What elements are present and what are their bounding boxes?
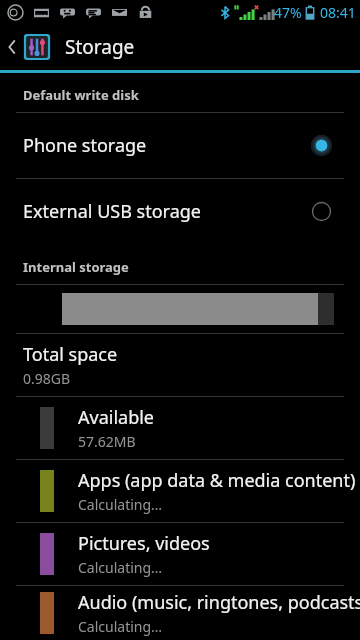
button[interactable]: External USB storage — [0, 179, 360, 244]
staticText: Total space — [23, 342, 118, 367]
button[interactable]: Up, Storage — [0, 24, 360, 70]
staticText: Pictures, videos — [78, 531, 210, 556]
staticText: 0.98GB — [23, 369, 71, 388]
staticText: 08:41 — [320, 3, 356, 22]
button[interactable]: Total space — [0, 334, 360, 396]
staticText: External USB storage — [23, 199, 201, 224]
button[interactable]: Audio (music, ringtones, podcasts) — [0, 586, 360, 640]
button[interactable]: Phone storage — [0, 113, 360, 178]
button[interactable]: Apps (app data & media content) — [0, 460, 360, 522]
staticText: Phone storage — [23, 133, 147, 158]
staticText: Apps (app data & media content) — [78, 468, 356, 493]
button[interactable]: Available — [0, 397, 360, 459]
staticText: Storage — [65, 34, 135, 60]
staticText: Internal storage — [23, 258, 129, 276]
staticText: Default write disk — [23, 86, 139, 104]
staticText: Calculating… — [78, 495, 163, 514]
staticText: Available — [78, 405, 154, 430]
staticText: 47% — [274, 3, 302, 22]
staticText: Calculating… — [78, 558, 163, 577]
staticText: Calculating… — [78, 617, 163, 636]
staticText: 57.62MB — [78, 432, 136, 451]
button[interactable]: Pictures, videos — [0, 523, 360, 585]
staticText: Audio (music, ringtones, podcasts) — [78, 590, 360, 615]
